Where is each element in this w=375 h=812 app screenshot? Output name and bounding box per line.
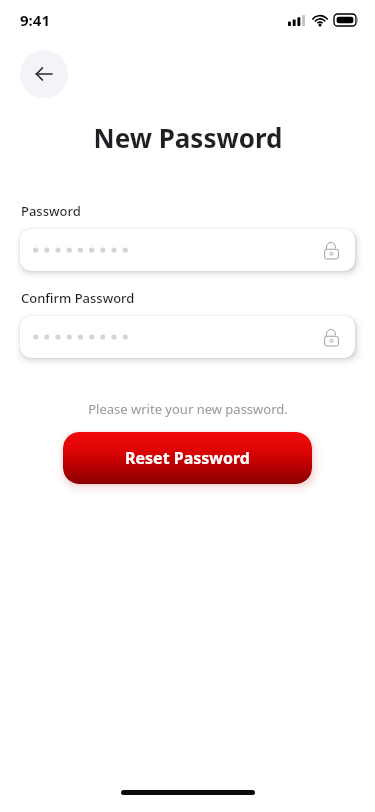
button[interactable]: Toggle password visibility: [20, 316, 355, 358]
staticText: Confirm Password: [21, 289, 135, 307]
staticText: Please write your new password.: [88, 400, 288, 418]
staticText: 9:41: [20, 10, 50, 30]
staticText: Reset Password: [125, 447, 250, 469]
button[interactable]: Toggle password visibility: [320, 326, 342, 348]
button[interactable]: Back: [20, 50, 68, 98]
staticText: New Password: [93, 120, 283, 155]
button[interactable]: Reset Password: [63, 432, 312, 484]
staticText: Password: [21, 202, 81, 220]
button[interactable]: Toggle password visibility: [20, 229, 355, 271]
button[interactable]: Toggle password visibility: [320, 239, 342, 261]
